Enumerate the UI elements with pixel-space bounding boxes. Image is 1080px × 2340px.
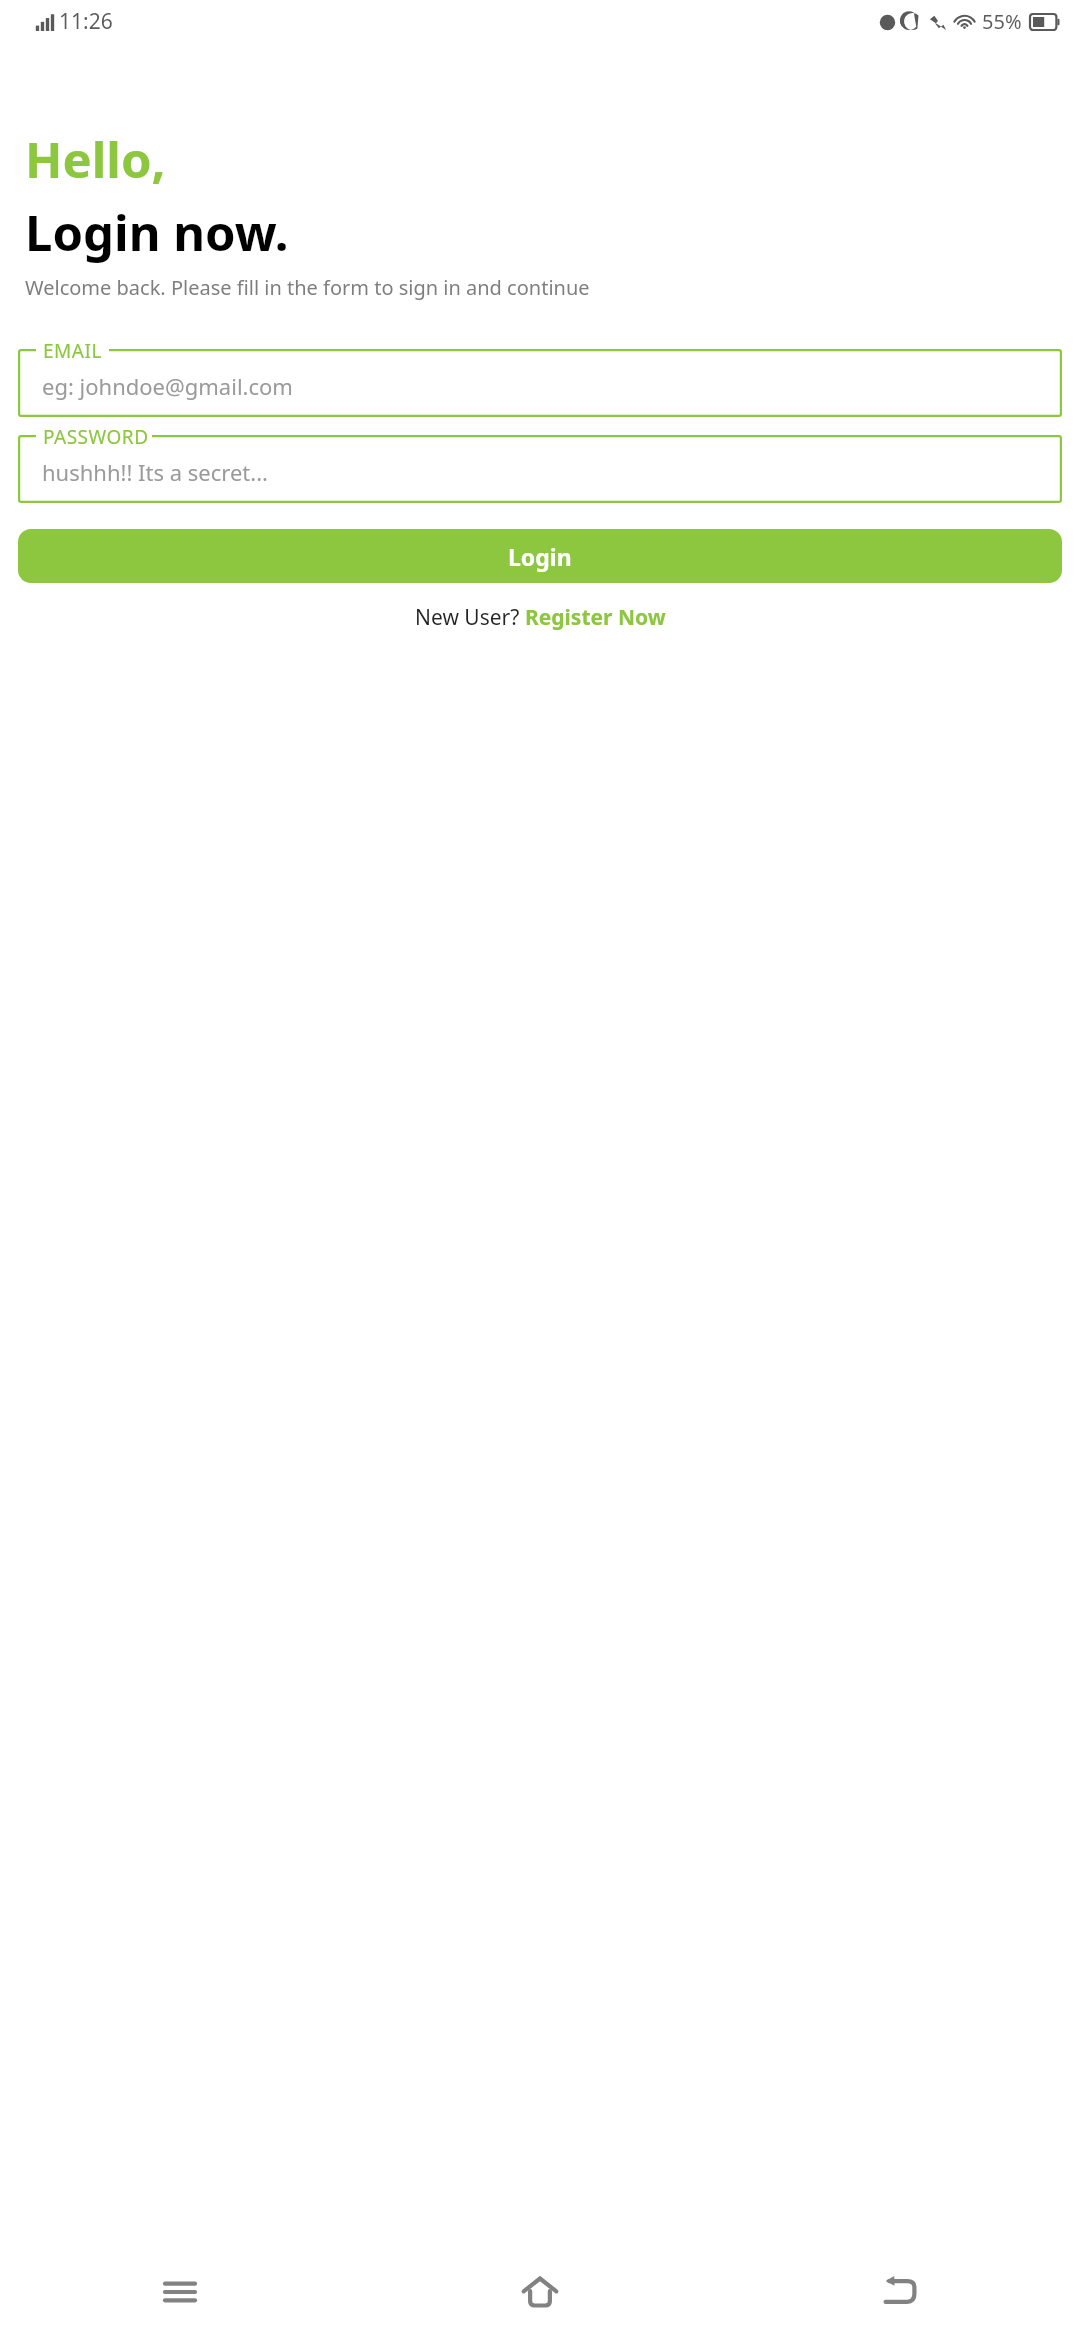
staticText: eg: johndoe@gmail.com: [42, 371, 293, 401]
staticText: Welcome back. Please fill in the form to…: [25, 274, 590, 301]
staticText: EMAIL: [43, 338, 102, 364]
button[interactable]: New User?: [18, 599, 1062, 636]
staticText: 55%: [982, 8, 1022, 35]
staticText: Hello,: [25, 126, 166, 193]
staticText: 11:26: [59, 7, 113, 36]
staticText: Login: [508, 541, 572, 572]
button[interactable]: Login: [18, 529, 1062, 583]
staticText: Login now.: [25, 199, 289, 266]
staticText: PASSWORD: [43, 424, 149, 450]
staticText: hushhh!! Its a secret...: [42, 457, 268, 487]
staticText: Register Now: [525, 603, 666, 632]
button[interactable]: Home: [360, 2244, 720, 2340]
staticText: New User?: [415, 603, 525, 632]
button[interactable]: Back: [720, 2244, 1080, 2340]
button[interactable]: Recent apps: [0, 2244, 360, 2340]
